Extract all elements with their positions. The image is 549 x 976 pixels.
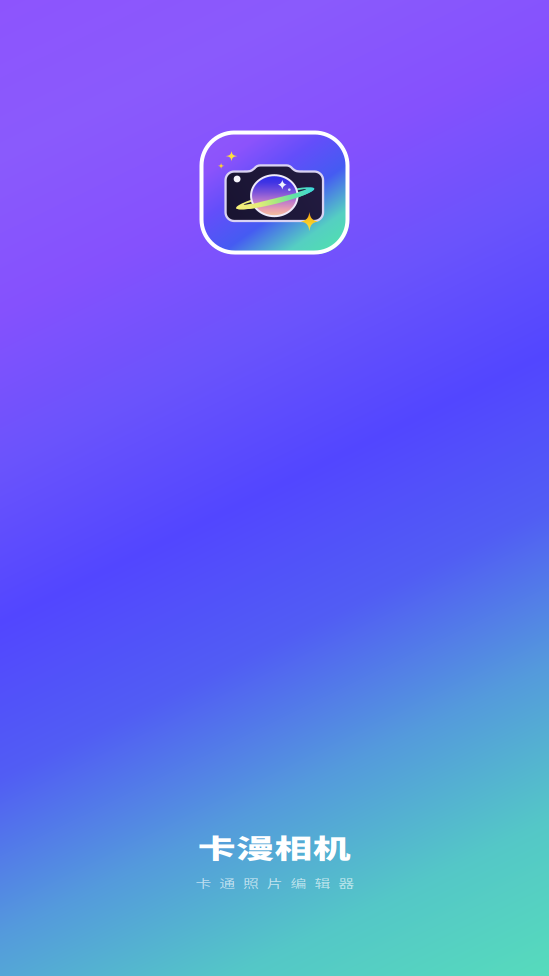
staticText: 卡漫相机 xyxy=(220,827,328,866)
staticText: 卡 通 照 片 编 辑 器 xyxy=(218,875,331,891)
